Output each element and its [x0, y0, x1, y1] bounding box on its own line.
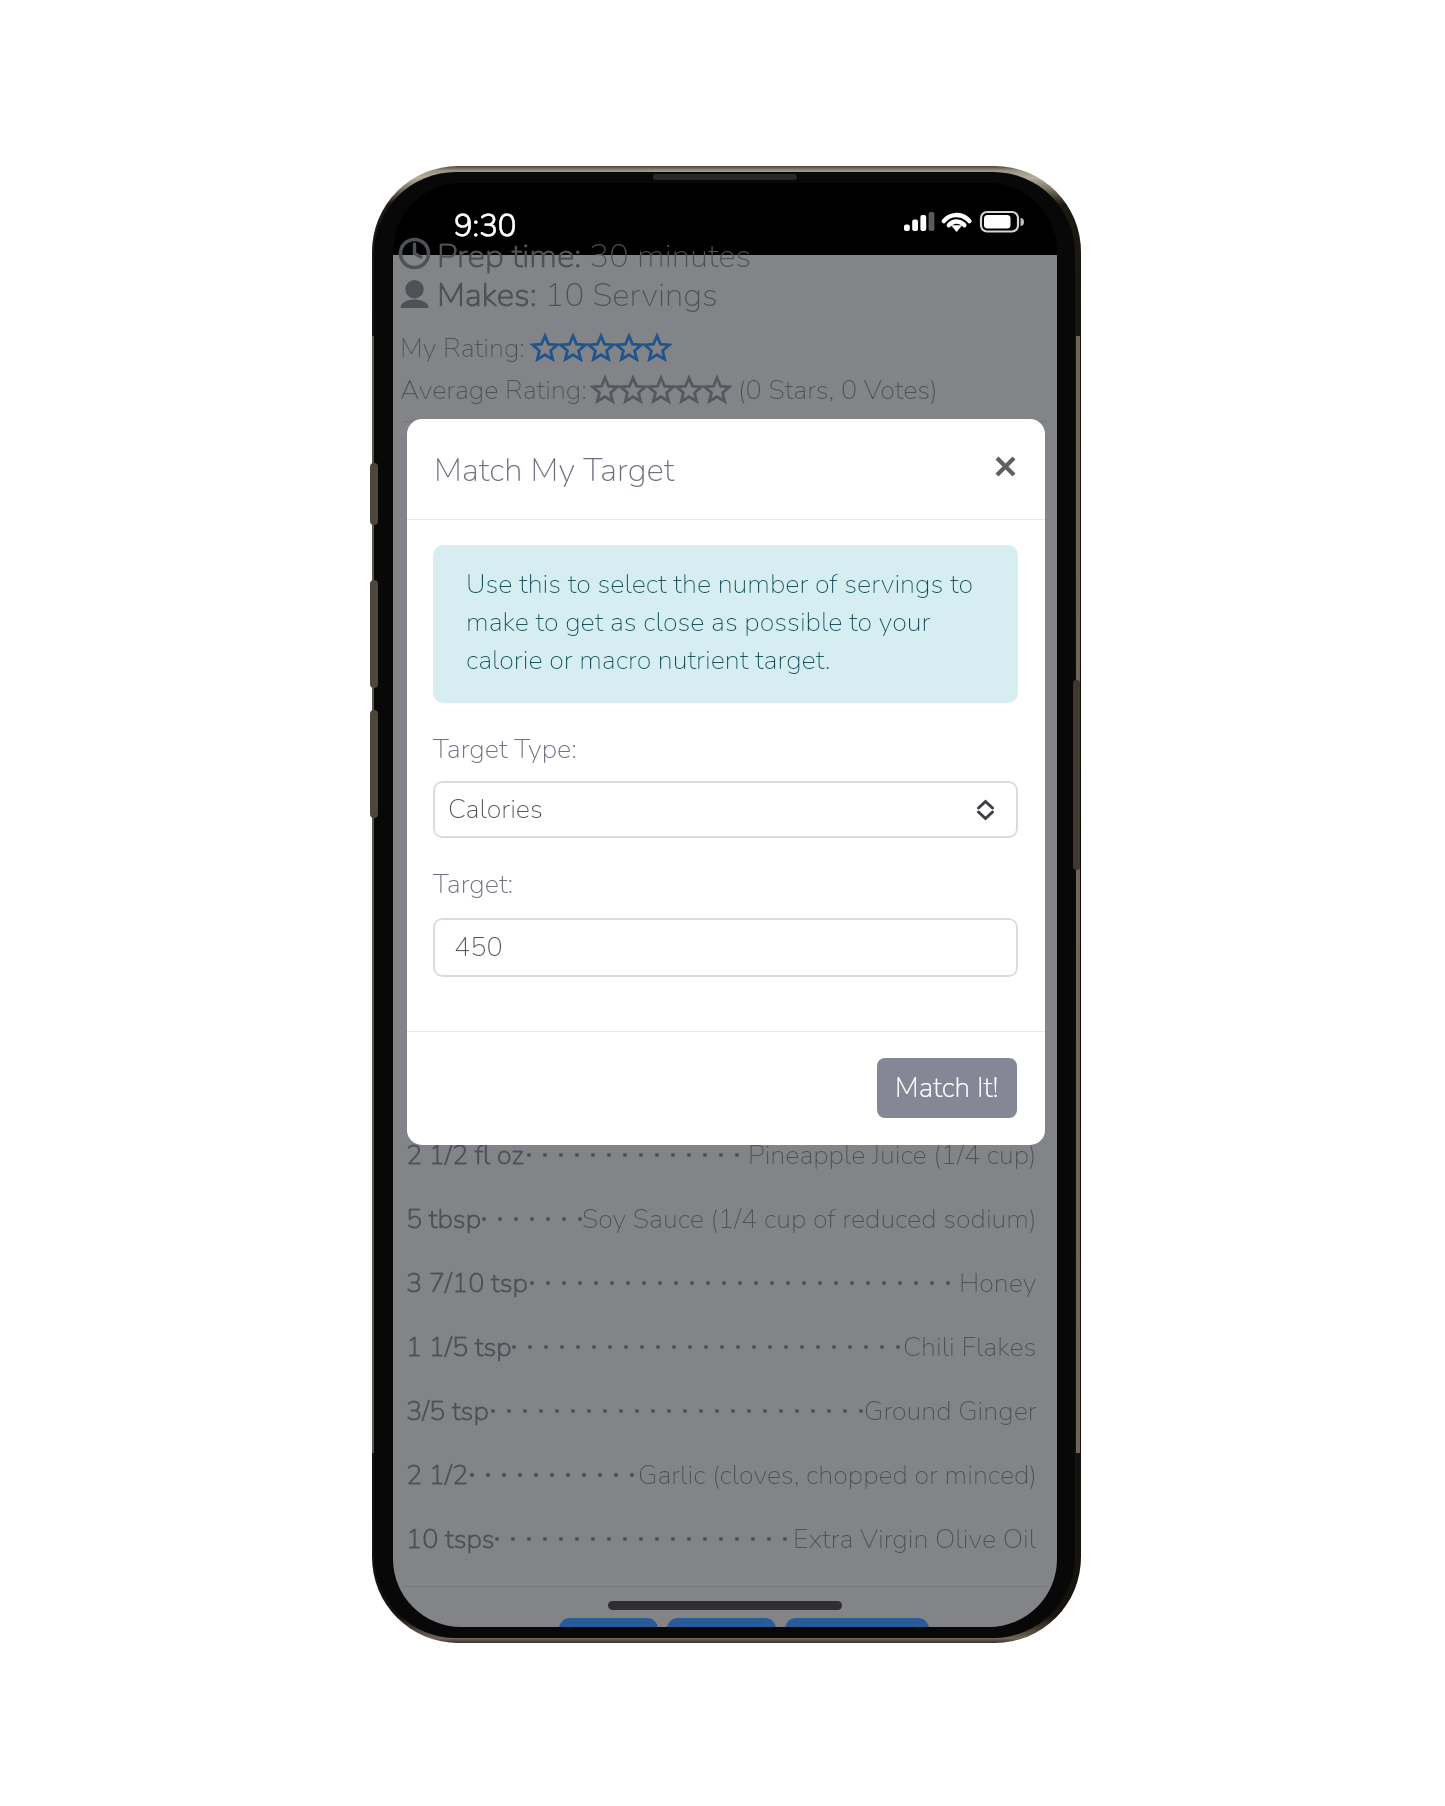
staticText: Match It! — [895, 1069, 999, 1107]
staticText: Prep time: 30 minutes — [437, 234, 752, 279]
staticText: Target Type: — [433, 731, 577, 768]
staticText: Ground Ginger — [864, 1393, 1037, 1430]
staticText: Match My Target — [434, 448, 675, 493]
staticText: (0 Stars, 0 Votes) — [738, 372, 938, 409]
staticText: 2 1/2 — [406, 1457, 469, 1494]
staticText: 450 — [454, 929, 503, 966]
staticText: 3/5 tsp — [406, 1393, 489, 1430]
staticText: Calories — [448, 791, 543, 828]
staticText: Soy Sauce (1/4 cup of reduced sodium) — [582, 1201, 1037, 1238]
staticText: Average Rating: — [400, 372, 587, 409]
button[interactable]: Close dialog — [983, 444, 1028, 489]
button[interactable]: Calories — [433, 781, 1018, 838]
staticText: 5 tbsp — [406, 1201, 481, 1238]
staticText: Target: — [433, 866, 514, 903]
staticText: Makes: 10 Servings — [437, 273, 718, 318]
staticText: Extra Virgin Olive Oil — [793, 1521, 1037, 1558]
staticText: 3 7/10 tsp — [406, 1265, 528, 1302]
staticText: Use this to select the number of serving… — [466, 566, 990, 679]
staticText: Garlic (cloves, chopped or minced) — [638, 1457, 1037, 1494]
button[interactable]: 450 — [433, 918, 1018, 977]
staticText: My Rating: — [400, 330, 525, 367]
staticText: 9:30 — [454, 205, 517, 247]
staticText: Honey — [959, 1265, 1037, 1302]
staticText: Chili Flakes — [903, 1329, 1037, 1366]
staticText: 10 tsps — [406, 1521, 495, 1558]
staticText: 1 1/5 tsp — [406, 1329, 512, 1366]
staticText: 2 1/2 fl oz — [406, 1137, 524, 1174]
staticText: Pineapple Juice (1/4 cup) — [748, 1137, 1037, 1174]
button[interactable]: Match It! — [877, 1058, 1017, 1118]
